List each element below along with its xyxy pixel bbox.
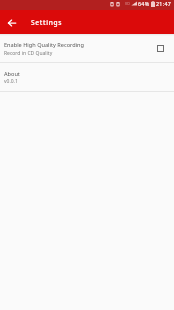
staticText: Enable High Quality Recording [4, 41, 84, 49]
staticText: Settings [31, 18, 63, 27]
staticText: About [4, 70, 20, 78]
button[interactable]: Navigate back [0, 10, 24, 34]
button[interactable]: About [0, 63, 174, 91]
staticText: VO [125, 1, 130, 6]
staticText: Record in CD Quality [4, 50, 53, 57]
staticText: 21:47 [156, 0, 172, 7]
button[interactable]: Enable High Quality Recording [0, 34, 174, 62]
staticText: v0.0.1 [4, 78, 18, 85]
button[interactable]: Enable High Quality Recording [154, 42, 167, 55]
staticText: 64% [138, 0, 150, 7]
